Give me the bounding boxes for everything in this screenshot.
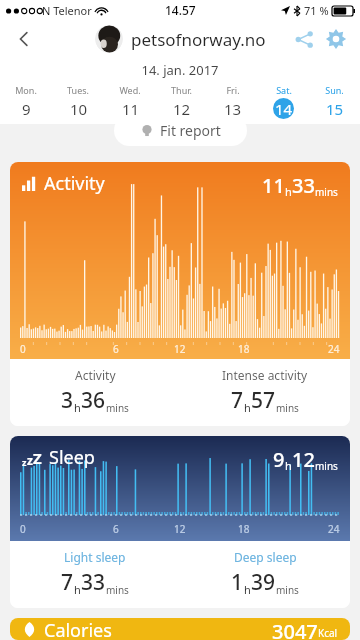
staticText: 14	[275, 99, 293, 119]
staticText: 33	[292, 172, 315, 199]
button[interactable]: Sat.	[258, 83, 309, 120]
staticText: z	[27, 452, 33, 468]
button[interactable]: Back	[6, 21, 42, 57]
staticText: 11	[122, 99, 140, 119]
staticText: h	[285, 184, 292, 199]
button[interactable]: Fit report	[114, 115, 247, 146]
staticText: mins	[106, 583, 129, 597]
staticText: 57	[251, 386, 276, 415]
button[interactable]: Tues.	[52, 83, 104, 120]
staticText: 3047	[272, 618, 318, 640]
staticText: 7	[61, 568, 74, 597]
staticText: Fri.	[226, 84, 240, 96]
staticText: h	[285, 458, 292, 473]
staticText: Calories	[44, 618, 112, 640]
staticText: 11	[262, 172, 285, 199]
button[interactable]: Share	[288, 23, 320, 55]
staticText: h	[244, 400, 251, 415]
staticText: Mon.	[15, 84, 37, 96]
staticText: 24	[328, 342, 340, 356]
staticText: Z	[33, 448, 42, 468]
staticText: 12	[174, 522, 186, 536]
button[interactable]: Fri.	[207, 83, 258, 120]
staticText: 33	[81, 568, 106, 597]
button[interactable]: Sun.	[309, 83, 360, 120]
staticText: 71 %	[304, 3, 329, 18]
staticText: 15	[326, 99, 344, 119]
staticText: Activity	[44, 171, 105, 196]
staticText: 12	[292, 446, 315, 473]
staticText: Tues.	[67, 84, 89, 96]
staticText: Kcal	[318, 626, 338, 640]
staticText: 39	[251, 568, 276, 597]
staticText: 36	[81, 386, 106, 415]
button[interactable]: petsofnorway.no	[95, 25, 266, 53]
staticText: 18	[238, 522, 250, 536]
staticText: mins	[315, 185, 338, 199]
staticText: mins	[276, 583, 299, 597]
staticText: 13	[224, 99, 242, 119]
staticText: N Telenor	[42, 3, 92, 18]
staticText: 10	[70, 99, 88, 119]
staticText: Light sleep	[64, 549, 126, 565]
button[interactable]: z	[10, 436, 350, 608]
button[interactable]: Settings	[320, 23, 352, 55]
button[interactable]: Mon.	[0, 83, 52, 120]
staticText: h	[74, 582, 81, 597]
staticText: 1	[231, 568, 244, 597]
staticText: Activity	[75, 367, 116, 383]
staticText: 7	[231, 386, 244, 415]
button[interactable]: Deep sleep	[180, 549, 350, 597]
button[interactable]: Calories	[10, 618, 350, 640]
staticText: Sleep	[49, 445, 95, 470]
button[interactable]: Activity	[10, 162, 350, 426]
staticText: 18	[238, 342, 250, 356]
staticText: Sat.	[276, 84, 292, 96]
staticText: Fit report	[160, 121, 221, 140]
staticText: h	[74, 400, 81, 415]
staticText: Deep sleep	[234, 549, 297, 565]
staticText: h	[244, 582, 251, 597]
button[interactable]: Light sleep	[10, 549, 180, 597]
button[interactable]: Intense activity	[180, 367, 350, 415]
staticText: 24	[328, 522, 340, 536]
staticText: 9	[22, 99, 31, 119]
staticText: Intense activity	[222, 367, 308, 383]
staticText: mins	[315, 459, 338, 473]
staticText: 14. jan. 2017	[0, 61, 360, 79]
staticText: 12	[173, 99, 191, 119]
staticText: petsofnorway.no	[131, 28, 266, 51]
staticText: 0	[20, 342, 26, 356]
staticText: 6	[113, 522, 119, 536]
staticText: 3	[61, 386, 74, 415]
staticText: 12	[174, 342, 186, 356]
staticText: 9	[273, 446, 285, 473]
staticText: Thur.	[171, 84, 192, 96]
staticText: mins	[276, 401, 299, 415]
staticText: 0	[20, 522, 26, 536]
staticText: 14.57	[165, 2, 196, 18]
button[interactable]: Activity	[10, 367, 180, 415]
staticText: Wed.	[119, 84, 141, 96]
staticText: Sun.	[325, 84, 344, 96]
button[interactable]: Wed.	[104, 83, 156, 120]
button[interactable]: Thur.	[156, 83, 207, 120]
staticText: z	[22, 456, 27, 468]
staticText: 6	[113, 342, 119, 356]
staticText: mins	[106, 401, 129, 415]
